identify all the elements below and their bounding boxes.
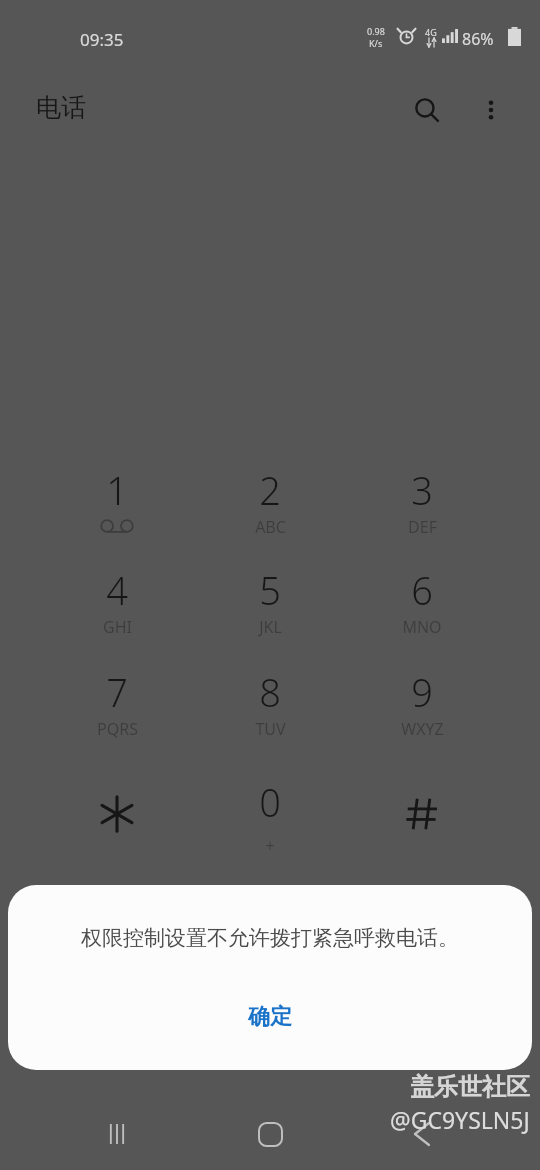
staticText: 2: [259, 464, 281, 516]
button[interactable]: Home: [238, 1098, 302, 1170]
button[interactable]: [55, 776, 179, 872]
button[interactable]: 5: [208, 564, 332, 660]
button[interactable]: Search: [403, 86, 451, 134]
button[interactable]: 确定: [170, 987, 370, 1047]
staticText: PQRS: [97, 718, 138, 740]
staticText: GHI: [103, 616, 132, 638]
staticText: 确定: [248, 1003, 292, 1031]
button[interactable]: 2: [208, 464, 332, 560]
button[interactable]: Back: [390, 1098, 454, 1170]
staticText: +: [265, 835, 275, 857]
staticText: 0.98: [367, 25, 385, 37]
staticText: TUV: [255, 718, 286, 740]
staticText: 电话: [36, 92, 86, 123]
button[interactable]: Recent apps: [85, 1098, 149, 1170]
staticText: 1: [106, 464, 128, 516]
button[interactable]: More options: [467, 86, 515, 134]
button[interactable]: 3: [360, 464, 484, 560]
staticText: 86%: [462, 28, 494, 50]
staticText: 3: [411, 464, 433, 516]
button[interactable]: 0: [208, 776, 332, 872]
staticText: WXYZ: [401, 718, 444, 740]
staticText: 0: [259, 776, 281, 828]
staticText: 6: [411, 564, 433, 616]
button[interactable]: 4: [55, 564, 179, 660]
staticText: ABC: [255, 516, 286, 538]
staticText: 盖乐世社区: [410, 1072, 530, 1102]
staticText: DEF: [408, 516, 437, 538]
staticText: 4G: [425, 26, 437, 38]
staticText: 9: [411, 666, 433, 718]
staticText: K/s: [369, 37, 383, 49]
button[interactable]: [360, 776, 484, 872]
button[interactable]: 8: [208, 666, 332, 762]
button[interactable]: 7: [55, 666, 179, 762]
button[interactable]: 6: [360, 564, 484, 660]
staticText: 4: [106, 564, 128, 616]
staticText: 8: [259, 666, 281, 718]
button[interactable]: 1: [55, 464, 179, 560]
staticText: MNO: [402, 616, 442, 638]
staticText: 09:35: [80, 28, 124, 51]
staticText: 5: [259, 564, 281, 616]
staticText: 权限控制设置不允许拨打紧急呼救电话。: [32, 925, 508, 951]
staticText: 7: [106, 666, 128, 718]
button[interactable]: 9: [360, 666, 484, 762]
staticText: JKL: [259, 616, 282, 638]
staticText: @GC9YSLN5J: [390, 1104, 530, 1135]
